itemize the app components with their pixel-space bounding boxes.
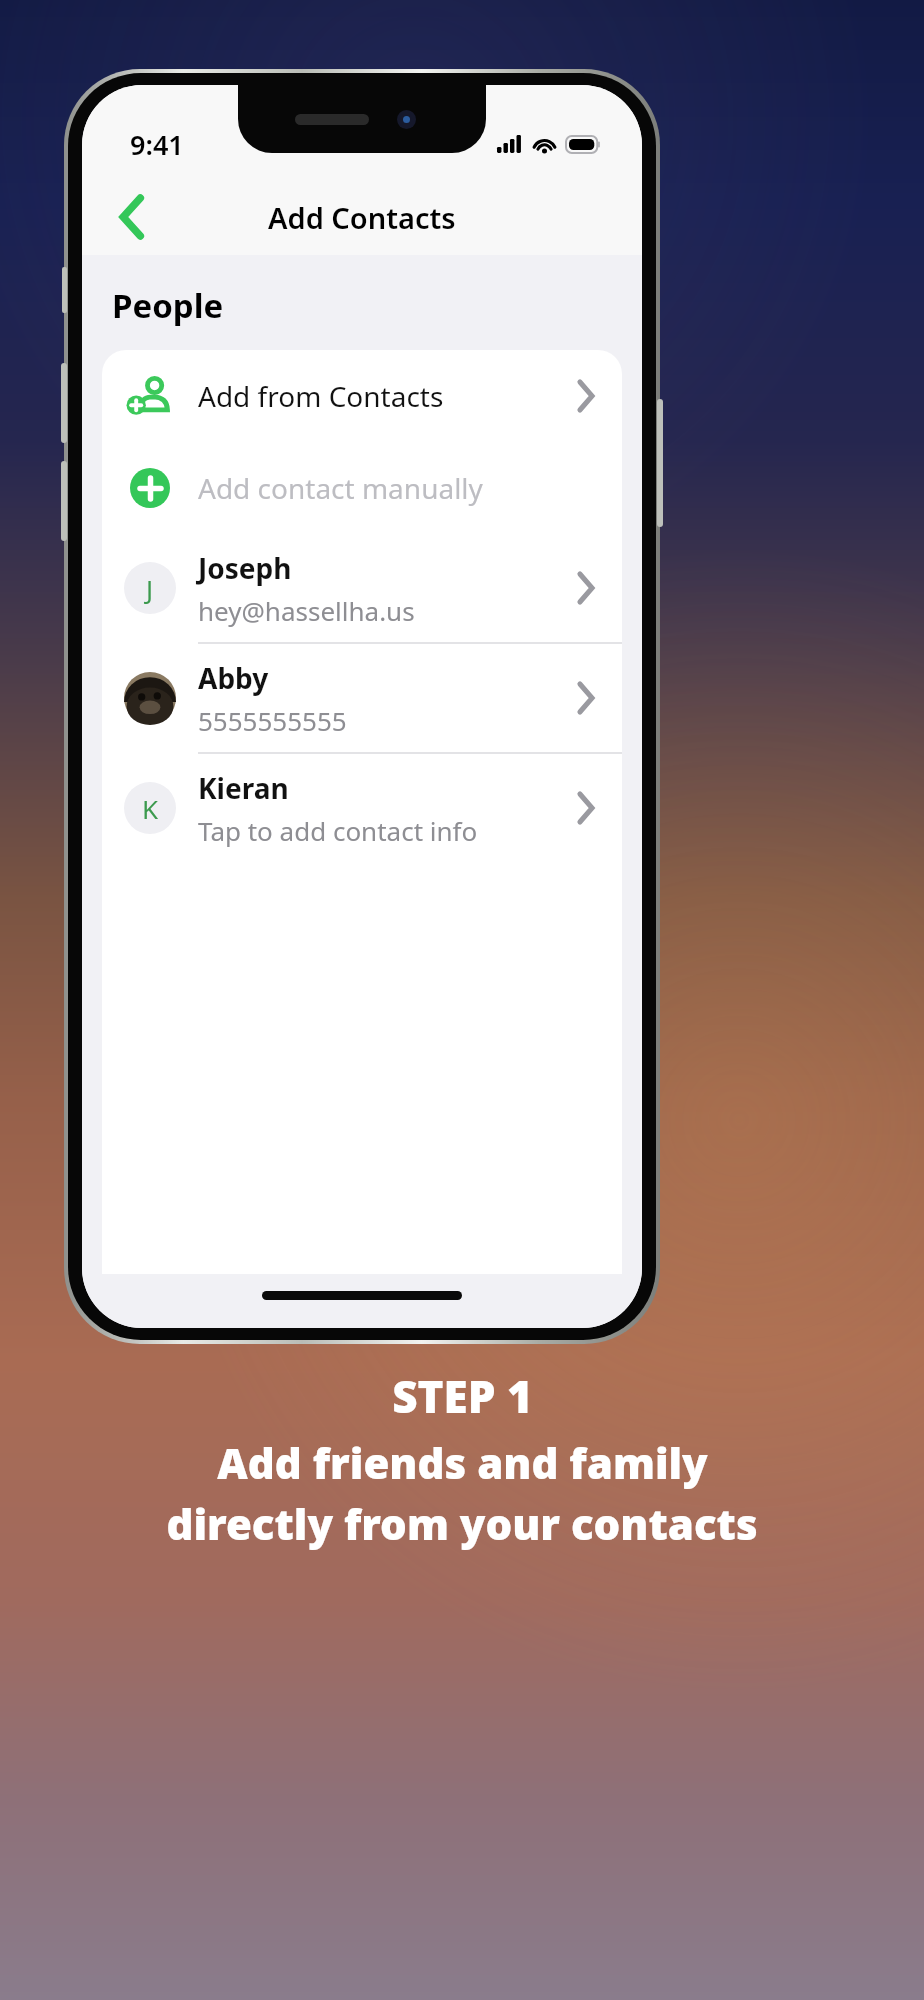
staticText: Tap to add contact info <box>198 813 478 848</box>
staticText: directly from your contacts <box>166 1495 758 1552</box>
staticText: Add contact manually <box>198 469 483 507</box>
button[interactable]: Add from Contacts <box>102 350 622 442</box>
staticText: Add Contacts <box>268 198 456 237</box>
staticText: Add friends and family <box>217 1434 708 1491</box>
staticText: K <box>142 791 159 826</box>
button[interactable]: Abby <box>102 644 622 752</box>
staticText: Add from Contacts <box>198 377 444 415</box>
staticText: 9:41 <box>130 126 184 163</box>
staticText: Joseph <box>198 549 292 587</box>
staticText: Abby <box>198 659 269 697</box>
staticText: STEP 1 <box>392 1366 533 1426</box>
button[interactable]: K <box>102 754 622 862</box>
staticText: J <box>146 571 154 606</box>
staticText: 5555555555 <box>198 703 347 738</box>
button[interactable]: J <box>102 534 622 642</box>
staticText: People <box>112 283 224 328</box>
staticText: Kieran <box>198 769 289 807</box>
button[interactable]: Back <box>104 189 160 245</box>
button[interactable]: Add contact manually <box>102 442 622 534</box>
staticText: hey@hassellha.us <box>198 593 415 628</box>
